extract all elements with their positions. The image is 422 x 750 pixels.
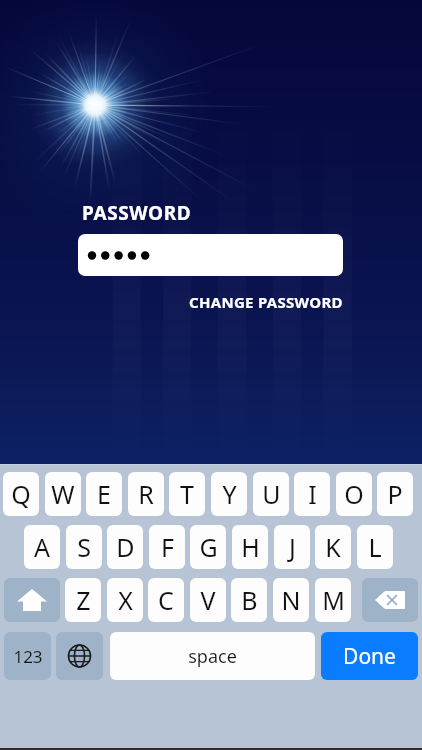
button[interactable]: E <box>86 472 122 516</box>
staticText: D <box>116 530 135 564</box>
button[interactable]: B <box>231 578 267 622</box>
button[interactable]: T <box>169 472 205 516</box>
staticText: P <box>387 477 403 511</box>
button[interactable]: Change keyboard <box>56 632 103 680</box>
button[interactable]: G <box>190 525 226 569</box>
staticText: O <box>344 477 364 511</box>
button[interactable]: W <box>45 472 81 516</box>
button[interactable]: H <box>232 525 268 569</box>
button[interactable]: 123 <box>4 632 51 680</box>
button[interactable]: F <box>149 525 185 569</box>
button[interactable]: Q <box>3 472 39 516</box>
staticText: T <box>180 477 194 511</box>
staticText: Q <box>11 477 31 511</box>
staticText: F <box>161 530 174 564</box>
button[interactable]: M <box>315 578 351 622</box>
button[interactable]: S <box>66 525 102 569</box>
staticText: space <box>188 644 237 669</box>
staticText: CHANGE PASSWORD <box>189 292 343 312</box>
staticText: U <box>262 477 281 511</box>
staticText: H <box>241 530 260 564</box>
button[interactable]: R <box>128 472 164 516</box>
staticText: X <box>118 583 133 617</box>
button[interactable]: Backspace <box>362 578 418 622</box>
button[interactable]: N <box>273 578 309 622</box>
button[interactable]: L <box>357 525 393 569</box>
staticText: M <box>322 583 345 617</box>
staticText: J <box>289 530 296 564</box>
button[interactable]: X <box>107 578 143 622</box>
button[interactable]: J <box>274 525 310 569</box>
staticText: V <box>200 583 216 617</box>
staticText: W <box>51 477 75 511</box>
staticText: E <box>97 477 111 511</box>
staticText: R <box>138 477 154 511</box>
button[interactable]: Y <box>211 472 247 516</box>
button[interactable]: I <box>294 472 330 516</box>
staticText: Done <box>343 642 396 671</box>
staticText: K <box>325 530 341 564</box>
staticText: 123 <box>13 645 43 668</box>
button[interactable]: V <box>190 578 226 622</box>
staticText: I <box>308 477 317 511</box>
staticText: C <box>158 583 174 617</box>
button[interactable]: K <box>315 525 351 569</box>
button[interactable]: Done <box>321 632 418 680</box>
staticText: S <box>77 530 91 564</box>
button[interactable]: C <box>148 578 184 622</box>
button[interactable]: space <box>110 632 315 680</box>
staticText: G <box>199 530 218 564</box>
staticText: A <box>34 530 50 564</box>
staticText: L <box>368 530 382 564</box>
button[interactable]: U <box>253 472 289 516</box>
button[interactable]: D <box>107 525 143 569</box>
button[interactable] <box>78 234 343 276</box>
staticText: N <box>281 583 301 617</box>
button[interactable]: Z <box>65 578 101 622</box>
button[interactable]: P <box>377 472 413 516</box>
button[interactable]: A <box>24 525 60 569</box>
staticText: Y <box>222 477 237 511</box>
button[interactable]: O <box>336 472 372 516</box>
staticText: Z <box>76 583 91 617</box>
staticText: B <box>241 583 258 617</box>
staticText: PASSWORD <box>82 200 192 226</box>
button[interactable]: CHANGE PASSWORD <box>160 290 343 314</box>
button[interactable]: Shift <box>4 578 60 622</box>
